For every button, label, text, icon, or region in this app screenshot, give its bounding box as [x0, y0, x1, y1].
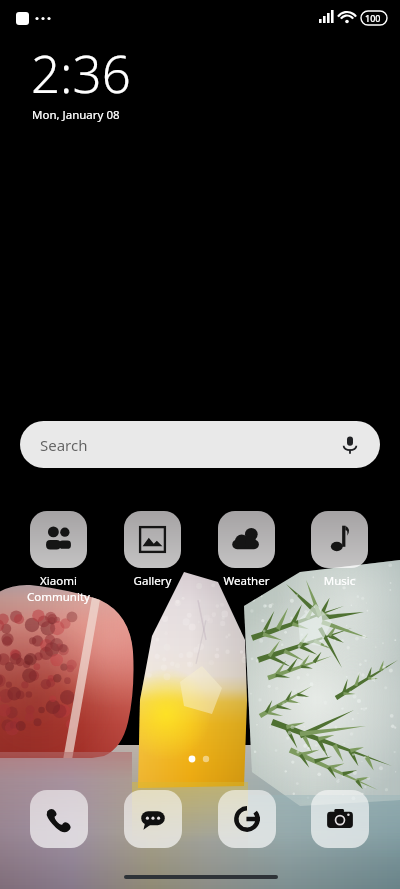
staticText: Gallery — [107, 573, 198, 589]
button[interactable]: Google — [218, 790, 276, 848]
staticText: 2:36 — [31, 38, 131, 107]
staticText: Weather — [201, 573, 292, 589]
staticText: 100 — [365, 12, 381, 24]
staticText: Music — [294, 573, 385, 589]
button[interactable]: Search — [20, 421, 380, 468]
button[interactable]: Weather — [201, 511, 292, 606]
staticText: Xiaomi Community — [13, 573, 104, 604]
staticText: Mon, January 08 — [32, 107, 120, 123]
button[interactable]: Gallery — [107, 511, 198, 606]
button[interactable]: Messages — [124, 790, 182, 848]
button[interactable]: Camera — [311, 790, 369, 848]
button[interactable]: Xiaomi Community — [13, 511, 104, 606]
button[interactable]: Music — [294, 511, 385, 606]
staticText: Search — [40, 435, 88, 455]
button[interactable]: Phone — [30, 790, 88, 848]
